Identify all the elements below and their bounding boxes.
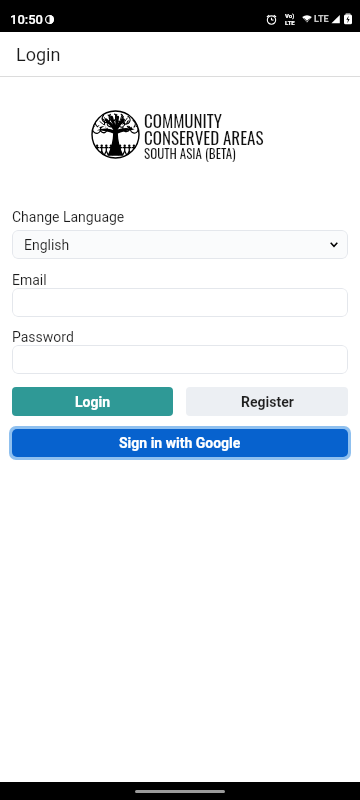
button[interactable] — [12, 288, 348, 317]
staticText: 10:50 — [10, 12, 44, 27]
other: Home — [135, 790, 225, 793]
staticText: SOUTH ASIA (BETA) — [144, 143, 236, 162]
button[interactable] — [12, 345, 348, 374]
staticText: Email — [12, 272, 47, 288]
staticText: English — [24, 237, 70, 253]
button[interactable]: English — [12, 230, 348, 259]
staticText: Register — [241, 394, 294, 410]
staticText: Change Language — [12, 209, 125, 225]
button[interactable]: Register — [186, 387, 348, 416]
staticText: Login — [75, 394, 111, 410]
staticText: Sign in with Google — [119, 435, 241, 451]
staticText: COMMUNITY — [144, 108, 222, 133]
staticText: Password — [12, 329, 74, 345]
staticText: Vo) — [285, 12, 295, 19]
button[interactable]: Login — [12, 387, 173, 416]
staticText: CONSERVED AREAS — [144, 125, 264, 150]
staticText: Login — [16, 44, 61, 65]
staticText: LTE — [285, 19, 295, 26]
staticText: LTE — [314, 14, 329, 25]
button[interactable]: Sign in with Google — [12, 429, 348, 457]
